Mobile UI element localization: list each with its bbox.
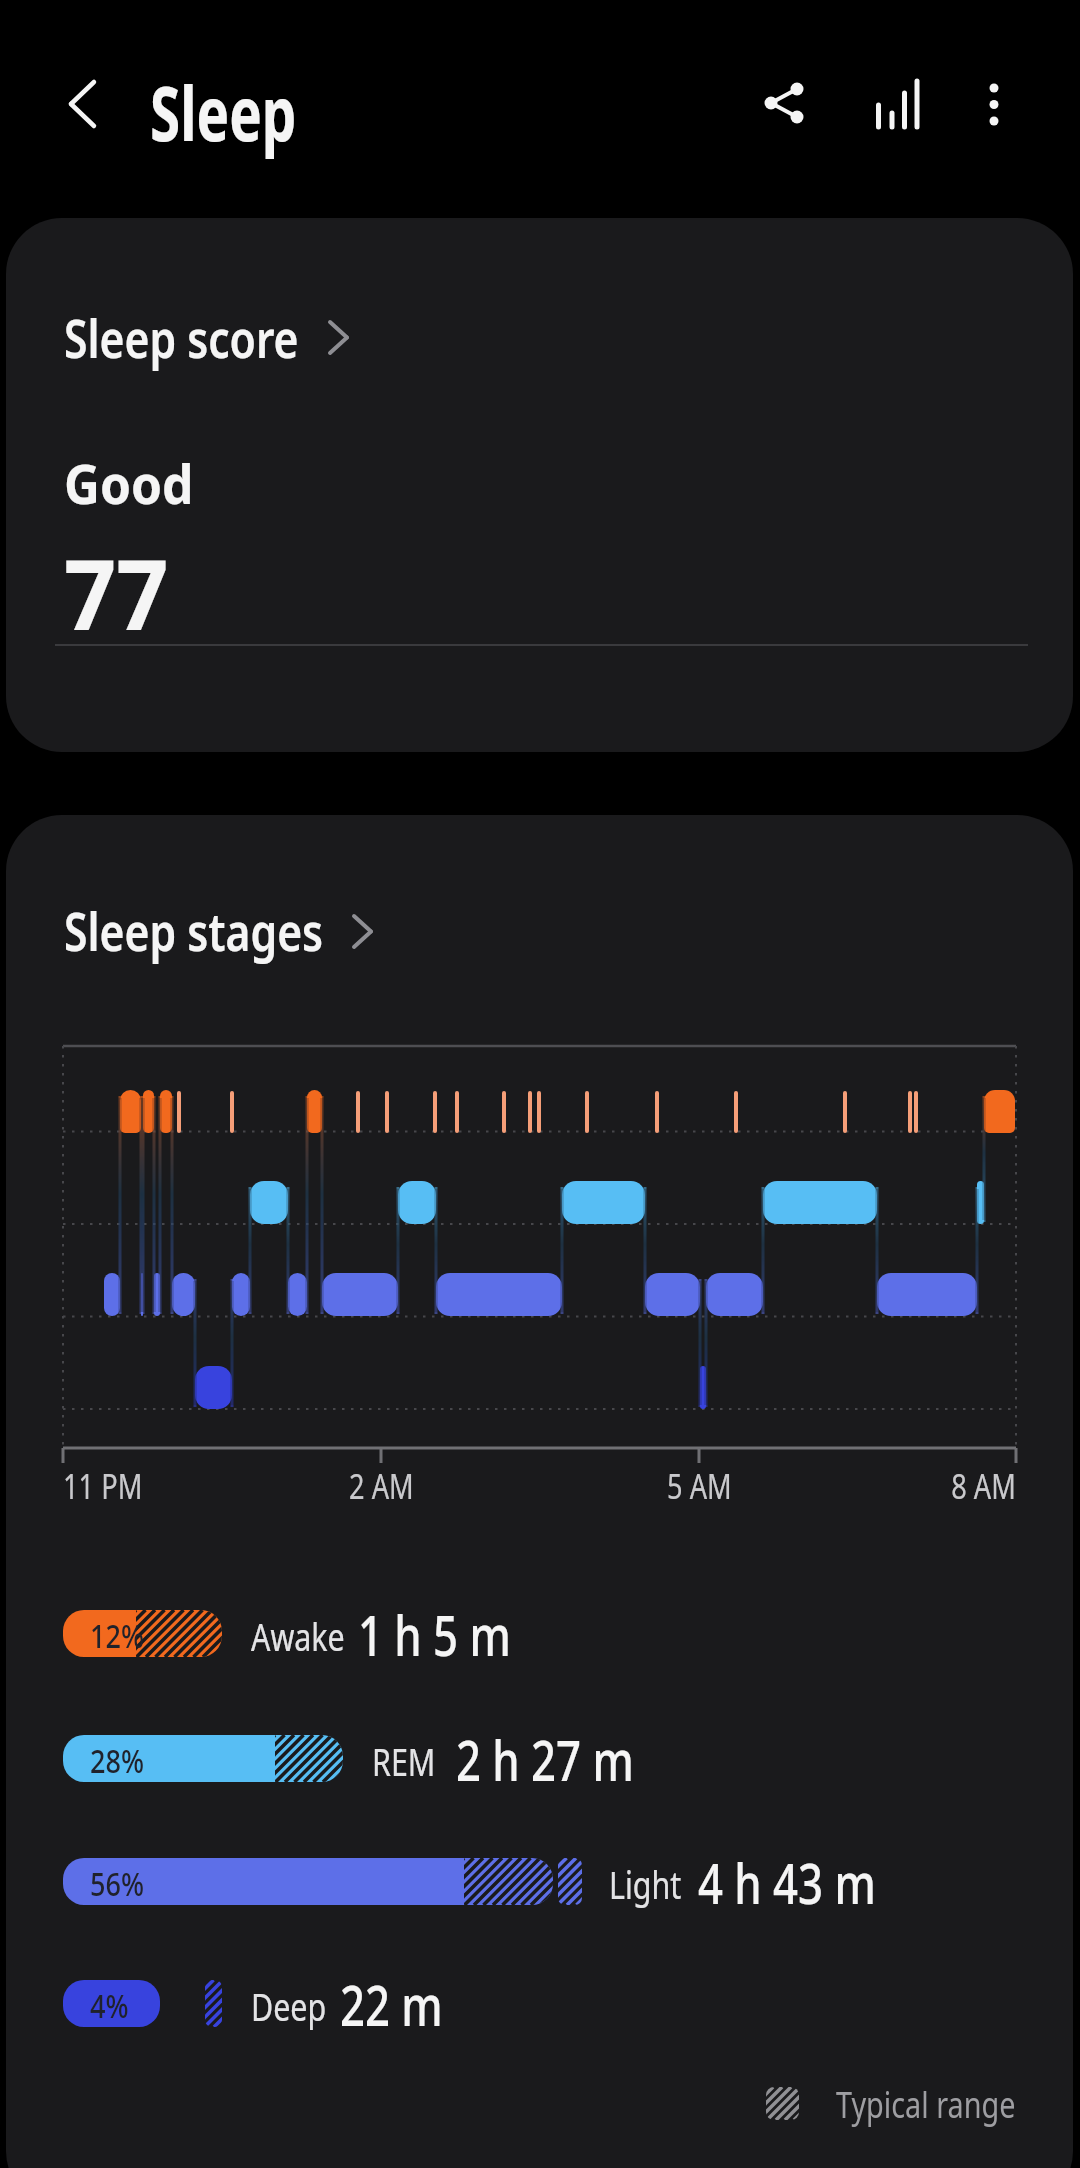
staticText: Deep: [251, 1980, 326, 2032]
staticText: 4 h 43 m: [698, 1844, 876, 1920]
staticText: 11 PM: [63, 1463, 143, 1509]
staticText: 1 h 5 m: [358, 1596, 511, 1672]
staticText: Sleep: [150, 60, 297, 164]
staticText: 12%: [90, 1613, 144, 1658]
button[interactable]: [755, 76, 811, 132]
staticText: 5 AM: [667, 1463, 732, 1509]
staticText: Sleep score: [64, 302, 299, 373]
staticText: Typical range: [836, 2080, 1016, 2129]
button[interactable]: [860, 70, 932, 136]
staticText: 2 AM: [349, 1463, 414, 1509]
button[interactable]: [50, 74, 110, 134]
staticText: 28%: [90, 1738, 144, 1783]
staticText: Sleep stages: [64, 895, 324, 966]
staticText: 22 m: [340, 1966, 443, 2042]
staticText: 77: [64, 527, 168, 647]
staticText: Light: [609, 1858, 682, 1910]
button[interactable]: [46, 298, 376, 378]
staticText: 56%: [90, 1861, 144, 1906]
staticText: Awake: [251, 1610, 345, 1662]
button[interactable]: [46, 890, 396, 970]
staticText: 4%: [90, 1983, 128, 2028]
staticText: 2 h 27 m: [456, 1721, 634, 1797]
staticText: REM: [372, 1735, 436, 1787]
staticText: Good: [64, 446, 194, 520]
staticText: 8 AM: [951, 1463, 1016, 1509]
button[interactable]: [966, 70, 1022, 136]
